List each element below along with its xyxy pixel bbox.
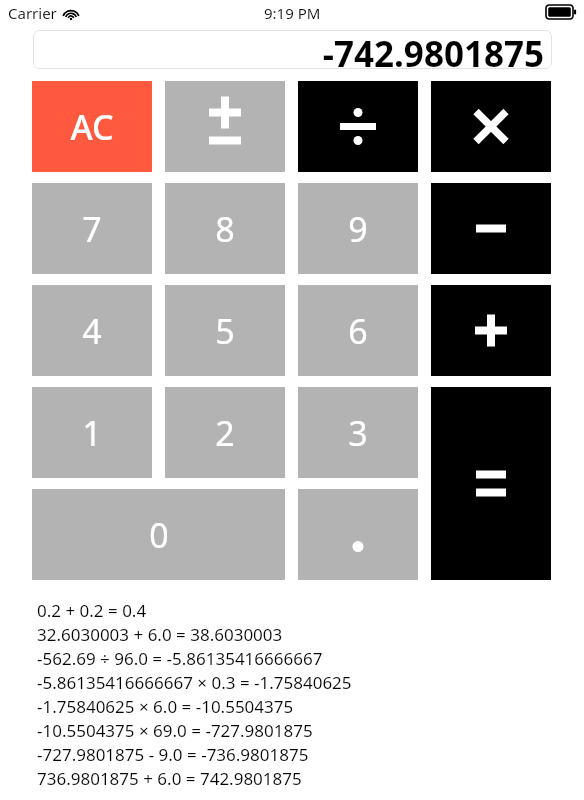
staticText: 4 bbox=[82, 308, 102, 354]
staticText: 8 bbox=[215, 206, 235, 252]
button[interactable]: 1 bbox=[32, 387, 152, 478]
button[interactable]: 5 bbox=[165, 285, 285, 376]
staticText: 3 bbox=[348, 410, 368, 456]
button[interactable]: 6 bbox=[298, 285, 418, 376]
staticText: 9:19 PM bbox=[264, 3, 321, 23]
staticText: 9 bbox=[348, 206, 368, 252]
staticText: 6 bbox=[348, 308, 368, 354]
staticText: -562.69 ÷ 96.0 = -5.86135416666667 bbox=[37, 647, 323, 670]
button[interactable]: -742.9801875 bbox=[33, 30, 552, 69]
staticText: -10.5504375 × 69.0 = -727.9801875 bbox=[37, 719, 313, 742]
staticText: 32.6030003 + 6.0 = 38.6030003 bbox=[37, 623, 283, 646]
button[interactable]: 2 bbox=[165, 387, 285, 478]
button[interactable]: Equals bbox=[431, 387, 551, 580]
staticText: AC bbox=[70, 104, 114, 150]
button[interactable]: 9 bbox=[298, 183, 418, 274]
staticText: Carrier bbox=[8, 3, 57, 23]
button[interactable]: Divide bbox=[298, 81, 418, 172]
staticText: -742.9801875 bbox=[322, 30, 544, 69]
button[interactable]: Minus bbox=[431, 183, 551, 274]
staticText: -1.75840625 × 6.0 = -10.5504375 bbox=[37, 695, 294, 718]
button[interactable]: Plus bbox=[431, 285, 551, 376]
staticText: -5.86135416666667 × 0.3 = -1.75840625 bbox=[37, 671, 352, 694]
button[interactable]: Decimal point bbox=[298, 489, 418, 580]
staticText: 0 bbox=[149, 512, 169, 558]
button[interactable]: 0 bbox=[32, 489, 285, 580]
staticText: 5 bbox=[215, 308, 235, 354]
button[interactable]: 8 bbox=[165, 183, 285, 274]
staticText: 1 bbox=[82, 410, 102, 456]
button[interactable]: Multiply bbox=[431, 81, 551, 172]
button[interactable]: 3 bbox=[298, 387, 418, 478]
staticText: -727.9801875 - 9.0 = -736.9801875 bbox=[37, 743, 309, 766]
staticText: 2 bbox=[215, 410, 235, 456]
button[interactable]: AC bbox=[32, 81, 152, 172]
button[interactable]: 4 bbox=[32, 285, 152, 376]
staticText: 736.9801875 + 6.0 = 742.9801875 bbox=[37, 767, 302, 790]
button[interactable]: 7 bbox=[32, 183, 152, 274]
staticText: 7 bbox=[82, 206, 102, 252]
staticText: 0.2 + 0.2 = 0.4 bbox=[37, 599, 147, 622]
button[interactable]: Plus minus bbox=[165, 81, 285, 172]
